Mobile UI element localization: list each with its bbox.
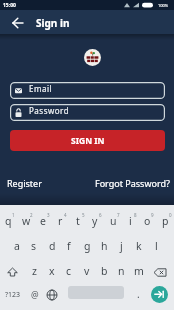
- staticText: a: [14, 239, 20, 253]
- staticText: l: [155, 239, 158, 253]
- button[interactable]: v: [57, 261, 117, 281]
- staticText: q: [5, 214, 12, 228]
- staticText: k: [136, 239, 142, 253]
- button[interactable]: g: [57, 236, 117, 256]
- button[interactable]: q: [0, 211, 38, 231]
- button[interactable]: r: [30, 211, 90, 231]
- button[interactable]: c: [39, 261, 99, 281]
- staticText: Forgot Password?: [95, 177, 170, 189]
- staticText: i: [129, 214, 132, 228]
- staticText: y: [92, 214, 98, 228]
- staticText: h: [101, 239, 108, 253]
- button[interactable]: [46, 289, 58, 301]
- button[interactable]: i: [100, 211, 160, 231]
- button[interactable]: x: [22, 261, 82, 281]
- button[interactable]: h: [74, 236, 134, 256]
- staticText: c: [66, 264, 72, 278]
- staticText: m: [134, 264, 144, 278]
- button[interactable]: [7, 267, 19, 278]
- button[interactable]: p: [135, 211, 174, 231]
- button[interactable]: SIGN IN: [10, 130, 165, 151]
- button[interactable]: [11, 16, 26, 30]
- button[interactable]: y: [65, 211, 125, 231]
- staticText: r: [58, 214, 63, 228]
- staticText: 2: [30, 212, 33, 218]
- staticText: Register: [7, 177, 42, 189]
- staticText: 15:00: [3, 2, 16, 9]
- staticText: v: [84, 264, 90, 278]
- button[interactable]: w: [0, 211, 56, 231]
- staticText: 4: [64, 212, 67, 218]
- button[interactable]: e: [13, 211, 73, 231]
- staticText: g: [84, 239, 91, 253]
- staticText: 3: [47, 212, 50, 218]
- staticText: 0: [169, 212, 172, 218]
- staticText: t: [76, 214, 80, 228]
- button[interactable]: @: [5, 285, 65, 305]
- staticText: SIGN IN: [71, 135, 105, 147]
- staticText: Email: [29, 83, 53, 94]
- button[interactable]: Password: [10, 104, 165, 121]
- button[interactable]: k: [109, 236, 169, 256]
- button[interactable]: Forgot Password?: [82, 173, 174, 193]
- button[interactable]: a: [0, 236, 47, 256]
- button[interactable]: [151, 286, 168, 303]
- staticText: Password: [29, 105, 70, 116]
- staticText: s: [31, 239, 37, 253]
- button[interactable]: s: [4, 236, 64, 256]
- button[interactable]: j: [91, 236, 151, 256]
- staticText: ?123: [5, 290, 21, 300]
- button[interactable]: f: [39, 236, 99, 256]
- staticText: x: [49, 264, 55, 278]
- button[interactable]: z: [4, 261, 64, 281]
- staticText: w: [22, 214, 31, 228]
- staticText: 100%: [158, 3, 169, 8]
- staticText: z: [32, 264, 37, 278]
- staticText: 5: [82, 212, 85, 218]
- staticText: 1: [12, 212, 15, 218]
- staticText: Sign in: [36, 16, 70, 30]
- button[interactable]: .: [108, 284, 168, 304]
- button[interactable]: m: [109, 261, 169, 281]
- staticText: o: [144, 214, 151, 228]
- button[interactable]: n: [91, 261, 151, 281]
- button[interactable]: o: [117, 211, 174, 231]
- staticText: f: [67, 239, 71, 253]
- staticText: d: [49, 239, 56, 253]
- staticText: @: [31, 289, 39, 301]
- button[interactable]: d: [22, 236, 82, 256]
- staticText: .: [137, 287, 140, 301]
- staticText: 6: [99, 212, 102, 218]
- button[interactable]: Register: [0, 173, 54, 193]
- button[interactable]: [153, 268, 167, 278]
- staticText: p: [162, 214, 169, 228]
- staticText: e: [40, 214, 46, 228]
- staticText: b: [101, 264, 108, 278]
- staticText: 7: [117, 212, 120, 218]
- staticText: u: [110, 214, 117, 228]
- button[interactable]: l: [126, 236, 174, 256]
- staticText: n: [118, 264, 125, 278]
- button[interactable]: b: [74, 261, 134, 281]
- staticText: 9: [151, 212, 154, 218]
- button[interactable]: u: [83, 211, 143, 231]
- staticText: 8: [134, 212, 137, 218]
- button[interactable]: ?123: [0, 285, 43, 305]
- staticText: j: [120, 239, 123, 253]
- button[interactable]: t: [48, 211, 108, 231]
- button[interactable]: Email: [10, 82, 165, 99]
